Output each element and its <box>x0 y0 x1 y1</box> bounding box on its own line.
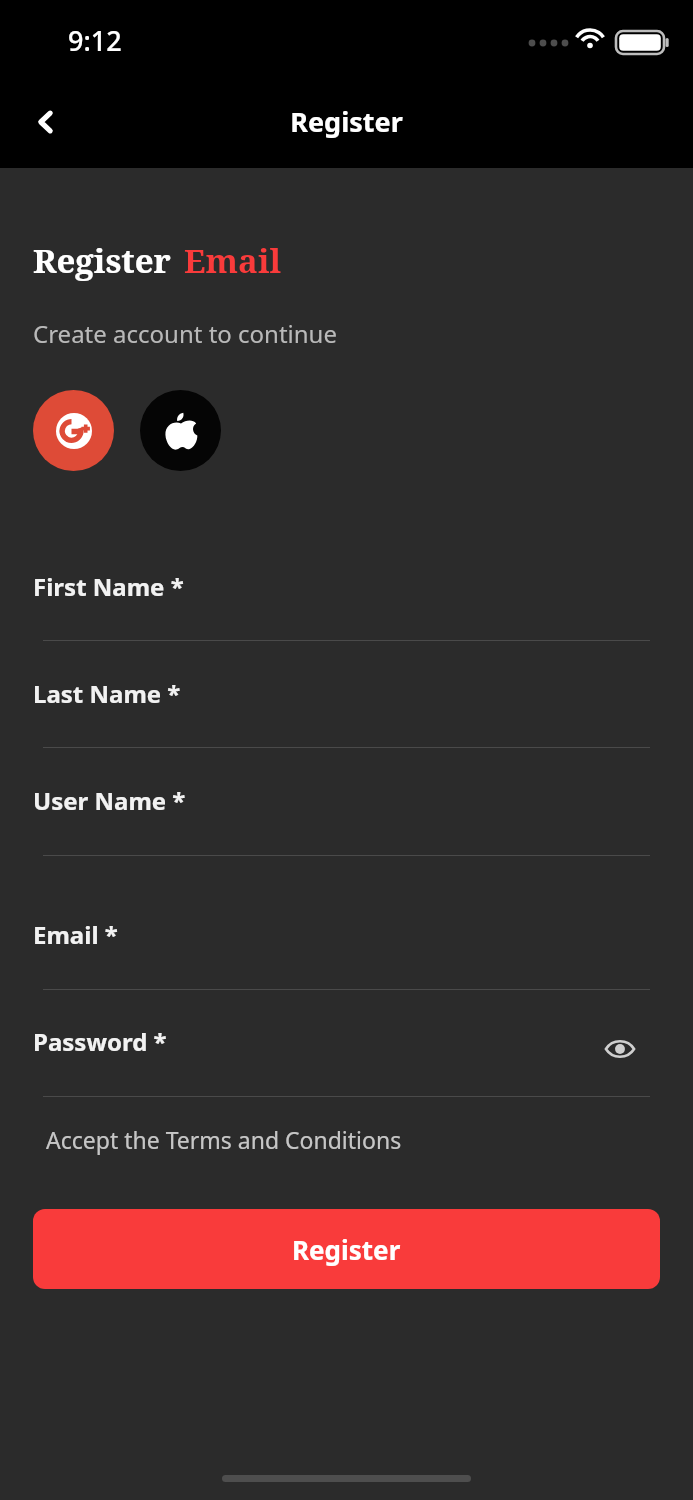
staticText: First Name * <box>33 570 184 603</box>
button[interactable]: First Name * <box>0 562 693 646</box>
button[interactable]: Sign up with Google <box>33 390 114 471</box>
button[interactable]: Register <box>33 1209 660 1289</box>
staticText: Email * <box>33 918 118 951</box>
button[interactable]: Password * <box>0 1017 693 1101</box>
staticText: Create account to continue <box>33 317 337 350</box>
staticText: Register <box>290 103 403 140</box>
staticText: 9:12 <box>68 22 122 59</box>
staticText: Last Name * <box>33 677 181 710</box>
button[interactable]: Sign up with Apple <box>140 390 221 471</box>
staticText: Register <box>292 1232 401 1267</box>
staticText: Register <box>33 238 171 283</box>
button[interactable]: Email * <box>0 910 693 994</box>
staticText: User Name * <box>33 784 186 817</box>
button[interactable]: Back <box>16 92 76 152</box>
staticText: Email <box>184 238 282 283</box>
staticText: Password * <box>33 1025 167 1058</box>
button[interactable]: Accept the Terms and Conditions <box>46 1124 402 1155</box>
button[interactable]: User Name * <box>0 776 693 860</box>
button[interactable]: Show password <box>588 1017 652 1081</box>
button[interactable]: Last Name * <box>0 669 693 753</box>
